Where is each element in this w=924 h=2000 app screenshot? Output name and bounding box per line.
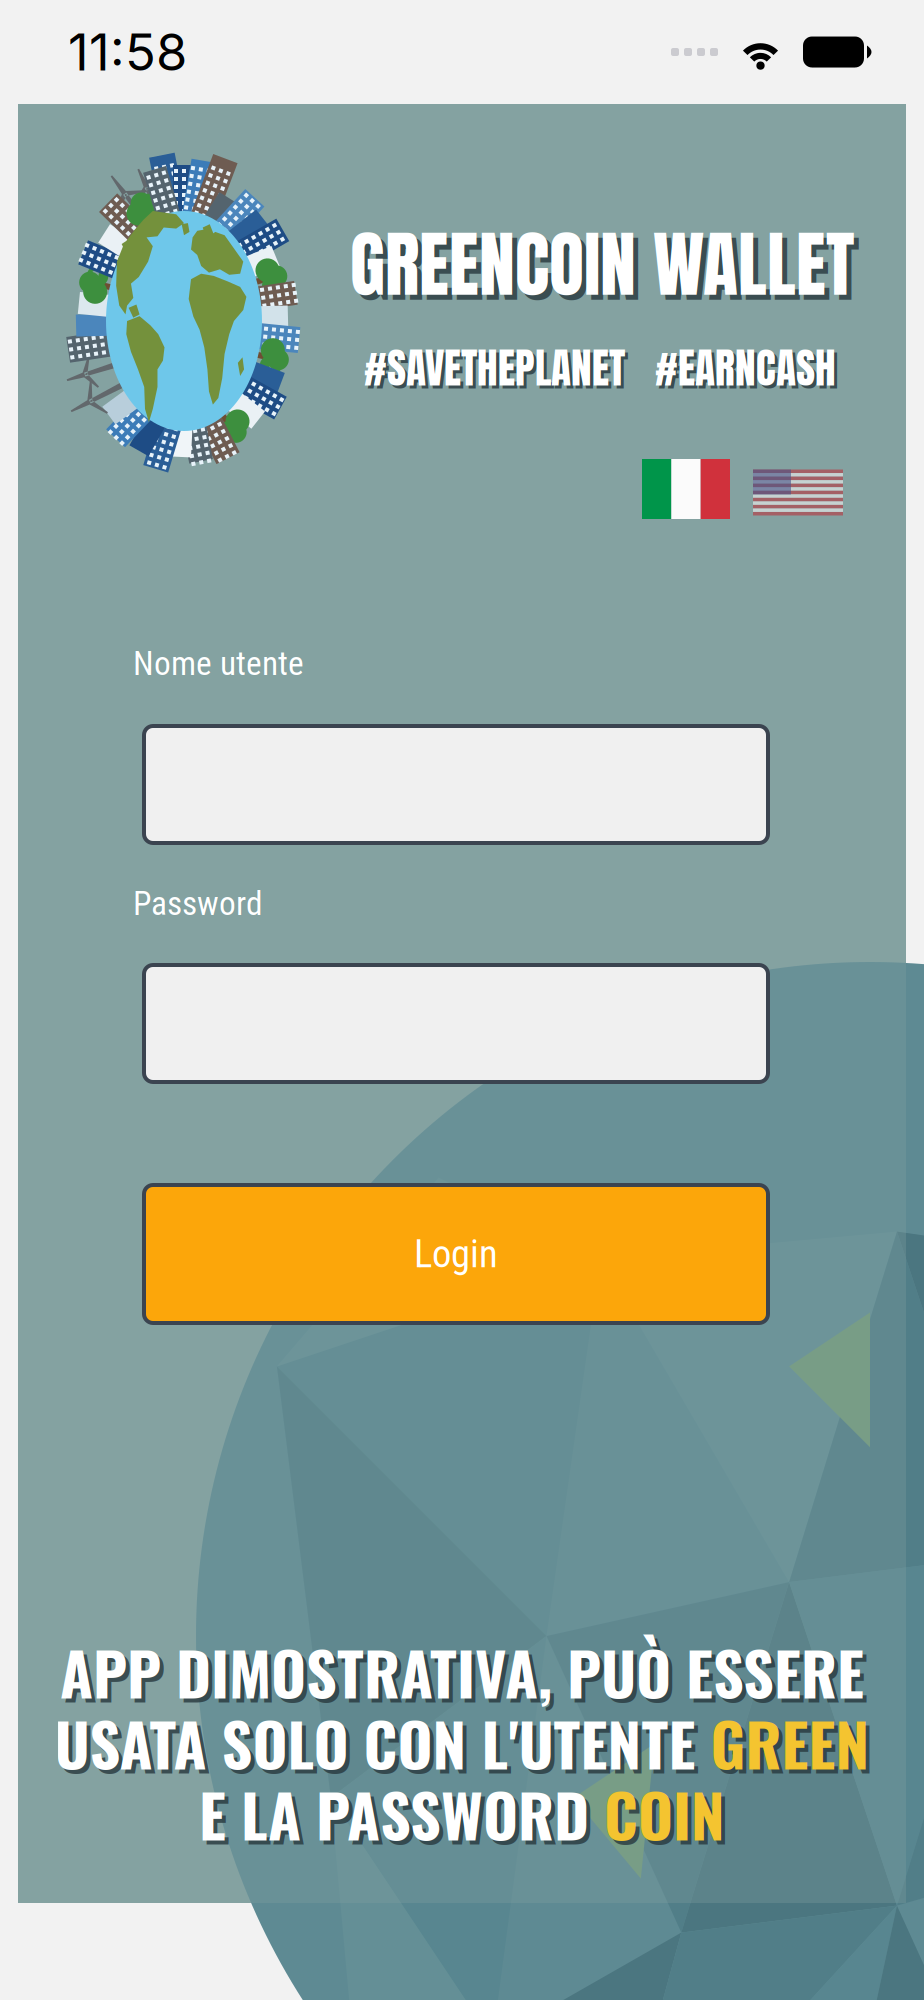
staticText: #SAVETHEPLANET #EARNCASH xyxy=(367,340,839,402)
staticText: GREEN xyxy=(714,1702,873,1791)
staticText: E LA PASSWORD xyxy=(203,1773,608,1862)
staticText: 11:58 xyxy=(68,21,187,83)
staticText: GREENCOIN WALLET xyxy=(355,215,859,323)
staticText: Login xyxy=(414,1231,498,1277)
staticText: COIN xyxy=(604,1769,725,1858)
staticText: Password xyxy=(133,884,263,923)
button[interactable]: Italiano xyxy=(642,459,730,519)
button[interactable]: Login xyxy=(144,1185,768,1323)
staticText: GREENCOIN WALLET xyxy=(350,210,854,318)
staticText: USATA SOLO CON L'UTENTE xyxy=(54,1698,710,1787)
staticText: APP DIMOSTRATIVA, PUÒ ESSERE xyxy=(60,1627,864,1716)
staticText: E LA PASSWORD xyxy=(199,1769,604,1858)
staticText: COIN xyxy=(608,1773,729,1862)
button[interactable]: English xyxy=(753,462,843,515)
staticText: GREEN xyxy=(710,1698,869,1787)
staticText: USATA SOLO CON L'UTENTE xyxy=(58,1702,714,1791)
staticText: Nome utente xyxy=(133,644,304,683)
staticText: #SAVETHEPLANET #EARNCASH xyxy=(364,337,836,399)
staticText: APP DIMOSTRATIVA, PUÒ ESSERE xyxy=(64,1631,868,1720)
